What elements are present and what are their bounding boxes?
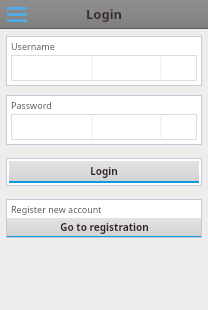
button[interactable]: Text input field bbox=[11, 55, 197, 81]
staticText: Register new account bbox=[11, 203, 102, 215]
staticText: Login bbox=[86, 5, 122, 23]
staticText: Username bbox=[11, 40, 55, 52]
button[interactable]: Go to registration bbox=[6, 218, 202, 238]
staticText: Go to registration bbox=[60, 220, 149, 234]
button[interactable]: Login bbox=[9, 161, 199, 183]
button[interactable]: Open navigation menu bbox=[0, 0, 34, 28]
staticText: Password bbox=[11, 99, 52, 111]
button[interactable]: Text input field bbox=[11, 114, 197, 140]
staticText: Login bbox=[90, 164, 118, 178]
